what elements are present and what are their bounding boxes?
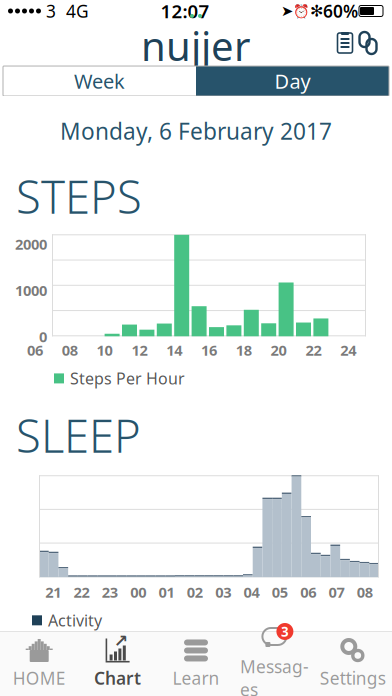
staticText: 3 — [41, 0, 56, 22]
staticText: Messages — [240, 655, 309, 696]
staticText: 3 — [281, 623, 289, 640]
staticText: Monday, 6 February 2017 — [60, 116, 332, 146]
staticText: 06 — [27, 340, 43, 360]
staticText: 20 — [271, 340, 287, 360]
staticText: Learn — [172, 666, 219, 689]
staticText: Chart — [94, 666, 141, 689]
staticText: 1000 — [15, 281, 47, 300]
staticText: ⏰ — [293, 3, 310, 19]
staticText: 0 — [39, 327, 47, 346]
staticText: ➤ — [281, 3, 293, 19]
staticText: Day — [274, 68, 310, 94]
staticText: STEPS — [16, 166, 142, 226]
button[interactable]: Chart — [78, 632, 157, 696]
staticText: 08 — [357, 582, 373, 602]
staticText: Week — [74, 68, 125, 94]
staticText: 22 — [305, 340, 321, 360]
staticText: ✻ — [310, 2, 323, 20]
staticText: 06 — [300, 582, 316, 602]
staticText: 4G — [56, 0, 89, 22]
button[interactable]: Messages — [235, 632, 314, 696]
staticText: nujjer — [141, 19, 251, 72]
staticText: 22 — [73, 582, 89, 602]
staticText: 08 — [62, 340, 78, 360]
button[interactable]: Learn — [157, 632, 235, 696]
staticText: 05 — [272, 582, 288, 602]
staticText: 14 — [166, 340, 182, 360]
staticText: 07 — [328, 582, 344, 602]
staticText: 03 — [215, 582, 231, 602]
staticText: ↗ — [114, 631, 129, 650]
button[interactable]: Week — [3, 66, 196, 96]
staticText: 60% — [323, 0, 358, 22]
staticText: 21 — [45, 582, 61, 602]
button[interactable]: Diary — [334, 31, 356, 55]
button[interactable]: Link device — [356, 31, 380, 55]
staticText: 18 — [236, 340, 252, 360]
staticText: 00 — [130, 582, 146, 602]
staticText: Settings — [320, 666, 386, 689]
staticText: 04 — [243, 582, 259, 602]
staticText: Activity — [48, 610, 102, 631]
staticText: 12:07 — [160, 0, 209, 23]
staticText: SLEEP — [16, 405, 141, 465]
staticText: EVENTS — [16, 647, 174, 696]
staticText: 02 — [187, 582, 203, 602]
button[interactable]: HOME — [0, 632, 78, 696]
staticText: 10 — [97, 340, 113, 360]
staticText: 12 — [131, 340, 147, 360]
staticText: Steps Per Hour — [70, 368, 185, 389]
staticText: 01 — [158, 582, 174, 602]
staticText: 2000 — [15, 234, 47, 254]
button[interactable]: Day — [196, 66, 389, 96]
button[interactable]: Settings — [314, 632, 392, 696]
staticText: 16 — [201, 340, 217, 360]
staticText: 24 — [340, 340, 356, 360]
staticText: 23 — [102, 582, 118, 602]
staticText: HOME — [13, 666, 66, 689]
